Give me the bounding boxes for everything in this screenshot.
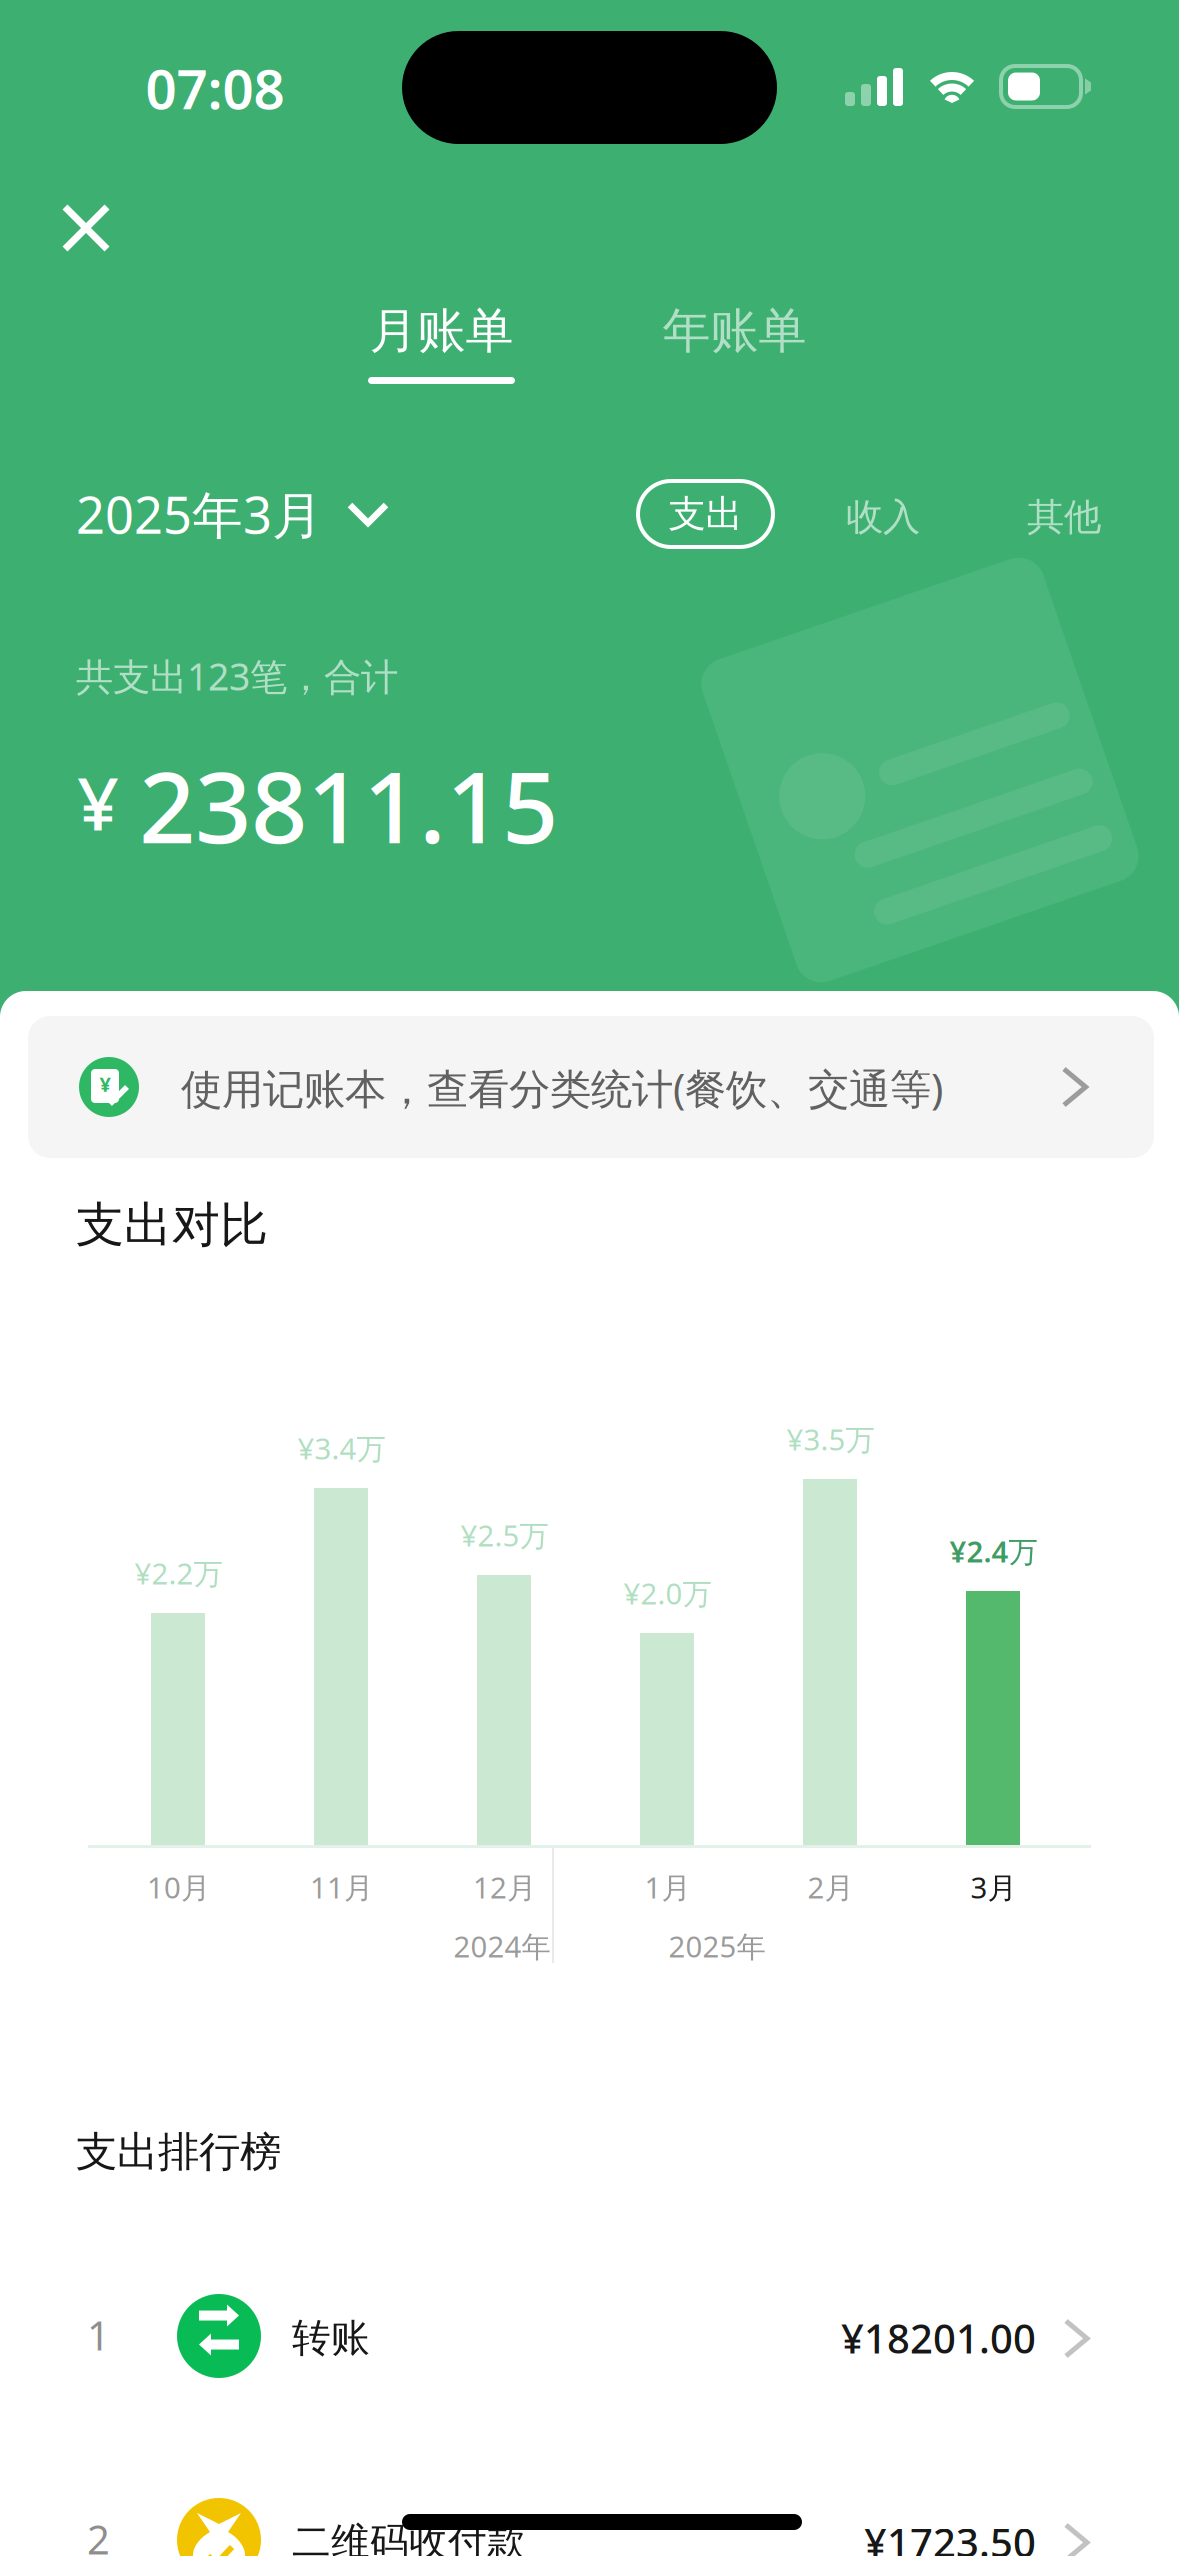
staticText: 月账单: [369, 301, 513, 360]
button[interactable]: 2025年3月: [76, 466, 386, 562]
staticText: 二维码收付款: [292, 2518, 526, 2556]
staticText: 11月: [310, 1867, 373, 1906]
staticText: ¥2.5万: [460, 1515, 548, 1554]
staticText: 共支出123笔，合计: [76, 651, 398, 701]
staticText: 2025年: [668, 1926, 765, 1965]
button[interactable]: ¥: [28, 1016, 1154, 1158]
staticText: 1: [87, 2308, 110, 2361]
staticText: 转账: [292, 2314, 370, 2362]
button[interactable]: 2: [0, 2440, 1179, 2556]
button[interactable]: 月账单: [295, 305, 588, 425]
staticText: 2月: [807, 1867, 853, 1906]
staticText: 12月: [473, 1867, 536, 1906]
staticText: ¥: [99, 1071, 110, 1097]
staticText: ¥3.5万: [786, 1419, 874, 1458]
button[interactable]: 收入: [843, 484, 923, 550]
staticText: 2024年: [453, 1926, 550, 1965]
staticText: 2025年3月: [76, 480, 323, 548]
staticText: ¥18201.00: [841, 2311, 1036, 2364]
staticText: 使用记账本，查看分类统计(餐饮、交通等): [181, 1061, 943, 1115]
staticText: 支出排行榜: [76, 2127, 281, 2177]
staticText: 收入: [846, 494, 920, 540]
staticText: 3月: [970, 1867, 1016, 1906]
staticText: 10月: [147, 1867, 210, 1906]
button[interactable]: Close: [21, 163, 151, 293]
staticText: 年账单: [662, 301, 806, 360]
staticText: 支出对比: [76, 1195, 268, 1254]
button[interactable]: 1: [0, 2236, 1179, 2440]
button[interactable]: 其他: [1024, 484, 1104, 550]
staticText: ¥2.2万: [134, 1553, 222, 1592]
staticText: ¥: [77, 753, 119, 851]
staticText: 其他: [1027, 494, 1101, 540]
staticText: 支出: [668, 491, 742, 537]
button[interactable]: 支出: [638, 481, 773, 547]
staticText: ¥2.0万: [623, 1573, 711, 1612]
staticText: 1月: [644, 1867, 690, 1906]
staticText: ¥3.4万: [297, 1428, 385, 1467]
staticText: ¥1723.50: [864, 2515, 1036, 2556]
staticText: 23811.15: [139, 739, 558, 870]
staticText: 07:08: [145, 52, 284, 124]
button[interactable]: 年账单: [588, 305, 881, 425]
staticText: ¥2.4万: [949, 1531, 1037, 1570]
staticText: 2: [87, 2512, 110, 2556]
